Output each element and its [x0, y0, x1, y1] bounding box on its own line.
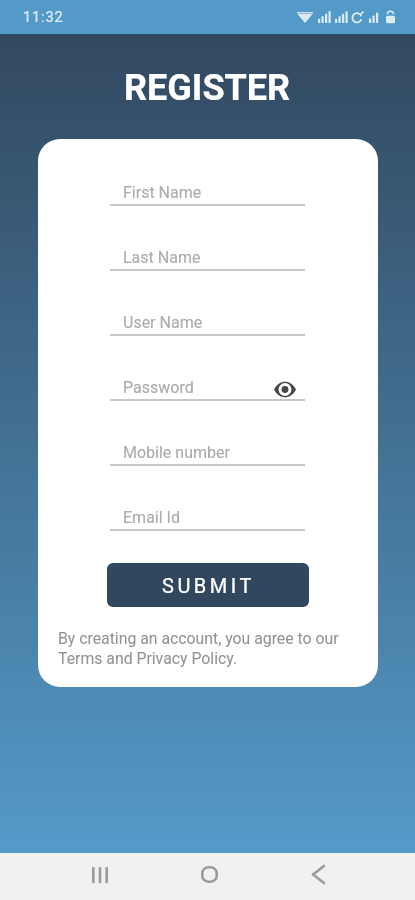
staticText: REGISTER [124, 67, 291, 101]
button[interactable] [110, 173, 305, 207]
button[interactable] [110, 238, 305, 272]
staticText: Email Id [123, 508, 180, 527]
staticText: By creating an account, you agree to our… [58, 629, 348, 668]
button[interactable] [110, 433, 305, 467]
button[interactable]: Home [175, 857, 243, 892]
button[interactable]: Recent apps [66, 857, 134, 892]
button[interactable]: Back [284, 857, 352, 892]
button[interactable] [110, 498, 305, 532]
button[interactable] [110, 303, 305, 337]
staticText: SUBMIT [162, 574, 255, 597]
staticText: 11:32 [23, 9, 64, 26]
button[interactable]: SUBMIT [107, 563, 309, 607]
staticText: Last Name [123, 248, 201, 267]
staticText: First Name [123, 183, 202, 202]
staticText: Mobile number [123, 443, 230, 462]
button[interactable]: Show password [267, 371, 303, 407]
button[interactable] [110, 368, 305, 402]
staticText: Password [123, 378, 194, 397]
staticText: User Name [123, 313, 203, 332]
